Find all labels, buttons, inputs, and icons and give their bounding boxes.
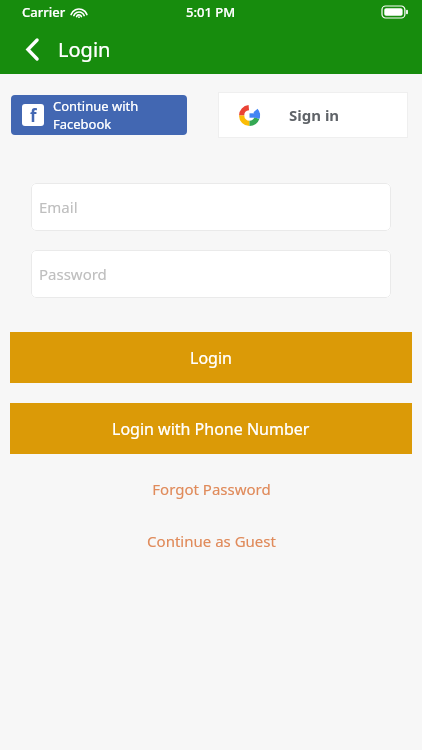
staticText: Login — [58, 36, 111, 63]
button[interactable]: Back — [14, 31, 50, 67]
staticText: Email — [39, 197, 78, 217]
staticText: Sign in — [289, 105, 340, 125]
staticText: Login — [190, 347, 232, 369]
staticText: Forgot Password — [152, 479, 271, 499]
staticText: 5:01 PM — [186, 3, 236, 21]
staticText: f — [30, 104, 37, 126]
staticText: Login with Phone Number — [112, 418, 310, 440]
staticText: Password — [39, 264, 107, 284]
staticText: Continue with Facebook — [53, 97, 187, 133]
button[interactable]: Login — [10, 332, 412, 383]
staticText: Continue as Guest — [147, 531, 276, 551]
button[interactable]: Email — [31, 183, 391, 231]
button[interactable]: f — [11, 95, 187, 135]
staticText: Carrier — [22, 3, 66, 21]
button[interactable]: Login with Phone Number — [10, 403, 412, 454]
button[interactable]: Forgot Password — [0, 477, 422, 501]
button[interactable]: Password — [31, 250, 391, 298]
button[interactable]: Sign in — [218, 92, 408, 138]
button[interactable]: Continue as Guest — [0, 529, 422, 553]
